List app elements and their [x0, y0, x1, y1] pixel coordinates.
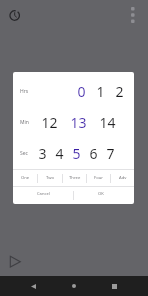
button[interactable]: More options	[129, 3, 143, 27]
staticText: 5	[72, 144, 81, 163]
button[interactable]: Timer	[4, 5, 24, 25]
button[interactable]: Home	[53, 276, 94, 296]
staticText: Four	[94, 175, 104, 181]
button[interactable]: Cancel	[13, 187, 73, 204]
button[interactable]: One	[13, 170, 37, 186]
button[interactable]: 3	[38, 144, 47, 163]
button[interactable]: 14	[99, 113, 116, 132]
staticText: 3	[38, 144, 47, 163]
staticText: 1	[96, 82, 105, 101]
staticText: One	[21, 175, 30, 181]
button[interactable]: Three	[63, 170, 86, 186]
staticText: 2	[115, 82, 124, 101]
staticText: Adv	[119, 175, 127, 181]
staticText: Cancel	[37, 191, 50, 197]
button[interactable]: Back	[13, 276, 53, 296]
button[interactable]: 7	[106, 144, 115, 163]
staticText: 0	[77, 82, 86, 101]
staticText: 7	[106, 144, 115, 163]
staticText: Three	[69, 175, 81, 181]
button[interactable]: 2	[115, 82, 124, 101]
staticText: 14	[99, 113, 116, 132]
button[interactable]: 13	[70, 113, 87, 132]
staticText: Min	[20, 119, 29, 126]
button[interactable]: Four	[87, 170, 110, 186]
button[interactable]: Adv	[111, 170, 134, 186]
staticText: 4	[55, 144, 64, 163]
button[interactable]: 12	[41, 113, 58, 132]
staticText: OK	[98, 191, 104, 197]
button[interactable]: 1	[96, 82, 105, 101]
button[interactable]: 5	[72, 144, 81, 163]
button[interactable]: Recents	[94, 276, 135, 296]
button[interactable]: OK	[74, 187, 134, 204]
button[interactable]: Start timer	[4, 250, 26, 272]
staticText: Hrs	[20, 88, 29, 95]
button[interactable]: Two	[38, 170, 62, 186]
staticText: 6	[89, 144, 98, 163]
button[interactable]: 0	[77, 82, 86, 101]
staticText: Sec	[20, 150, 28, 157]
button[interactable]: 6	[89, 144, 98, 163]
staticText: 13	[70, 113, 87, 132]
button[interactable]: 4	[55, 144, 64, 163]
staticText: 12	[41, 113, 58, 132]
staticText: Two	[46, 175, 55, 181]
